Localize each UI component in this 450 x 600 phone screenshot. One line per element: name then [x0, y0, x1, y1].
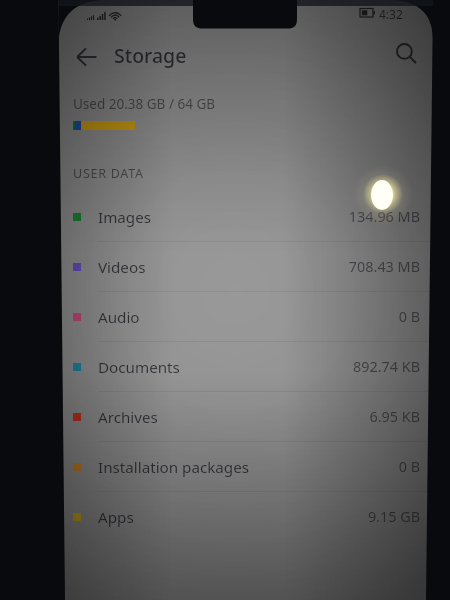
- button[interactable]: Audio: [0, 292, 450, 342]
- button[interactable]: Videos: [0, 242, 450, 292]
- staticText: 4:32: [379, 6, 403, 22]
- staticText: Storage: [114, 42, 187, 69]
- staticText: Installation packages: [98, 457, 250, 478]
- staticText: 0 B: [398, 307, 420, 327]
- button[interactable]: Search: [391, 38, 423, 70]
- staticText: 708.43 MB: [348, 257, 420, 277]
- button[interactable]: Archives: [0, 392, 450, 442]
- staticText: Documents: [98, 357, 180, 378]
- staticText: Archives: [98, 407, 158, 428]
- staticText: USER DATA: [73, 165, 144, 182]
- staticText: 9.15 GB: [367, 507, 420, 527]
- button[interactable]: Installation packages: [0, 442, 450, 492]
- staticText: 6.95 KB: [369, 407, 420, 427]
- button[interactable]: Apps: [0, 492, 450, 542]
- staticText: Images: [98, 207, 152, 228]
- staticText: 892.74 KB: [352, 357, 420, 377]
- staticText: Videos: [98, 257, 146, 278]
- button[interactable]: Back: [70, 40, 104, 74]
- staticText: Apps: [98, 507, 134, 528]
- staticText: 0 B: [398, 457, 420, 477]
- button[interactable]: Documents: [0, 342, 450, 392]
- button[interactable]: Images: [0, 192, 450, 242]
- staticText: Used 20.38 GB / 64 GB: [73, 95, 215, 113]
- staticText: Audio: [98, 307, 140, 328]
- staticText: 134.96 MB: [348, 207, 420, 227]
